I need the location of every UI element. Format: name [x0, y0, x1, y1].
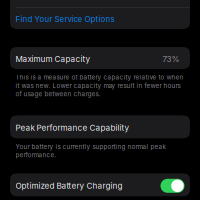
button[interactable]: Maximum Capacity [0, 47, 200, 69]
staticText: 73% [162, 54, 179, 64]
staticText: This is a measure of battery capacity re… [15, 73, 183, 98]
button[interactable]: Find Your Service Options [10, 7, 190, 29]
button[interactable]: Optimized Battery Charging [0, 173, 200, 196]
staticText: Maximum Capacity [15, 54, 90, 64]
staticText: Find Your Service Options [15, 14, 114, 24]
staticText: Optimized Battery Charging [15, 181, 122, 191]
staticText: Peak Performance Capability [15, 123, 129, 133]
button[interactable]: Peak Performance Capability [0, 115, 200, 138]
staticText: Your battery is currently supporting nor… [15, 143, 165, 159]
